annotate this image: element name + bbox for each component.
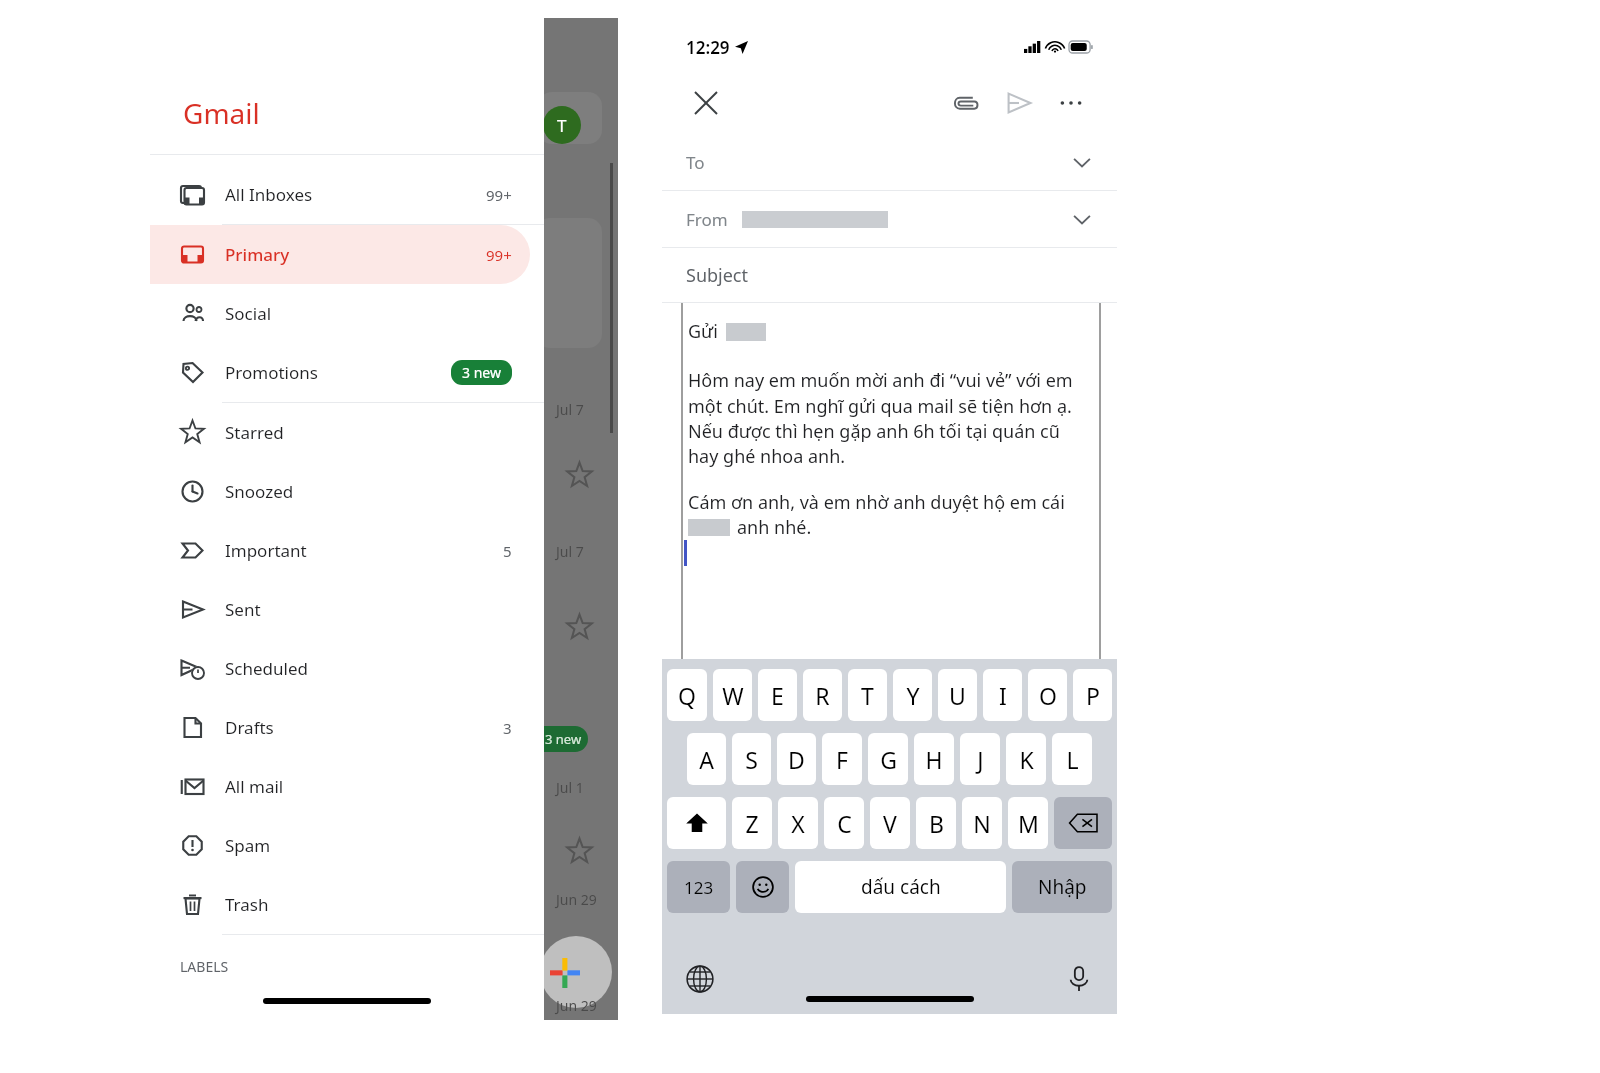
staticText: 12:29 [686, 36, 730, 59]
button[interactable]: G [868, 733, 908, 785]
staticText: Gmail [183, 94, 260, 132]
button[interactable]: Drafts [150, 698, 530, 757]
staticText: Spam [225, 834, 271, 857]
button[interactable]: Change keyboard [678, 957, 722, 1001]
staticText: W [722, 680, 744, 711]
button[interactable]: All mail [150, 757, 530, 816]
button[interactable]: Send [999, 83, 1039, 123]
button[interactable]: Y [893, 669, 932, 721]
button[interactable]: Social [150, 284, 530, 343]
button[interactable]: Shift [667, 797, 726, 849]
staticText: Important [225, 539, 307, 562]
staticText: Nhập [1038, 874, 1087, 900]
staticText: M [1018, 808, 1039, 839]
button[interactable]: W [713, 669, 752, 721]
staticText: LABELS [180, 957, 229, 976]
button[interactable]: Primary [150, 225, 530, 284]
button[interactable]: Voice input [1057, 957, 1101, 1001]
staticText: H [925, 744, 943, 775]
button[interactable]: P [1073, 669, 1112, 721]
button[interactable]: 123 [667, 861, 730, 913]
staticText: A [699, 744, 714, 775]
staticText: I [999, 680, 1007, 711]
button[interactable]: Nhập [1012, 861, 1112, 913]
staticText: 123 [684, 876, 714, 899]
staticText: Gửi [688, 319, 718, 344]
button[interactable]: O [1028, 669, 1067, 721]
button[interactable]: All Inboxes [150, 165, 530, 224]
staticText: E [771, 680, 784, 711]
button[interactable]: C [824, 797, 864, 849]
staticText: Jul 7 [556, 542, 584, 561]
staticText: Primary [225, 243, 290, 266]
staticText: Hôm nay em muốn mời anh đi “vui vẻ” với … [688, 368, 1073, 468]
button[interactable]: T [848, 669, 887, 721]
button[interactable]: M [1008, 797, 1048, 849]
staticText: To [686, 151, 705, 174]
staticText: T [557, 114, 567, 137]
staticText: Jun 29 [556, 996, 597, 1015]
button[interactable]: Emoji [736, 861, 789, 913]
button[interactable]: L [1052, 733, 1092, 785]
staticText: Subject [686, 263, 749, 288]
staticText: Snoozed [225, 480, 294, 503]
staticText: O [1039, 680, 1057, 711]
button[interactable]: I [983, 669, 1022, 721]
button[interactable]: Promotions [150, 343, 530, 402]
staticText: 3 new [545, 730, 582, 748]
button[interactable]: Scheduled [150, 639, 530, 698]
button[interactable]: A [687, 733, 726, 785]
button[interactable]: Trash [150, 875, 530, 934]
staticText: 3 new [462, 363, 501, 382]
button[interactable]: Close [688, 85, 724, 121]
button[interactable]: D [777, 733, 816, 785]
staticText: F [836, 744, 848, 775]
button[interactable]: dấu cách [795, 861, 1006, 913]
staticText: C [837, 808, 852, 839]
staticText: Cám ơn anh, và em nhờ anh duyệt hộ em cá… [688, 490, 1065, 515]
staticText: T [861, 680, 874, 711]
button[interactable]: Q [667, 669, 707, 721]
button[interactable]: B [916, 797, 956, 849]
button[interactable]: F [822, 733, 862, 785]
staticText: P [1086, 680, 1100, 711]
button[interactable]: S [732, 733, 771, 785]
button[interactable]: R [803, 669, 842, 721]
staticText: D [788, 744, 805, 775]
button[interactable]: Subject [662, 248, 1117, 302]
button[interactable]: H [914, 733, 954, 785]
button[interactable]: Important [150, 521, 530, 580]
button[interactable]: To [662, 134, 1117, 190]
button[interactable]: Sent [150, 580, 530, 639]
button[interactable]: Z [732, 797, 772, 849]
staticText: J [977, 744, 984, 775]
staticText: Scheduled [225, 657, 308, 680]
staticText: 3 [503, 718, 512, 738]
button[interactable]: Backspace [1054, 797, 1112, 849]
button[interactable]: Snoozed [150, 462, 530, 521]
staticText: V [883, 808, 897, 839]
staticText: 5 [503, 541, 512, 561]
button[interactable]: X [778, 797, 818, 849]
staticText: All Inboxes [225, 183, 313, 206]
button[interactable]: Attach file [945, 83, 985, 123]
staticText: Z [745, 808, 759, 839]
staticText: Social [225, 302, 272, 325]
button[interactable]: Spam [150, 816, 530, 875]
button[interactable]: Starred [150, 403, 530, 462]
staticText: Sent [225, 598, 261, 621]
button[interactable]: V [870, 797, 910, 849]
button[interactable]: J [960, 733, 1000, 785]
staticText: Drafts [225, 716, 274, 739]
staticText: Q [678, 680, 696, 711]
staticText: S [745, 744, 758, 775]
staticText: Y [906, 680, 920, 711]
button[interactable]: K [1006, 733, 1046, 785]
button[interactable]: From [662, 191, 1117, 247]
button[interactable]: N [962, 797, 1002, 849]
staticText: Starred [225, 421, 284, 444]
button[interactable]: U [938, 669, 977, 721]
staticText: anh nhé. [737, 515, 812, 540]
button[interactable]: E [758, 669, 797, 721]
button[interactable]: More options [1051, 83, 1091, 123]
